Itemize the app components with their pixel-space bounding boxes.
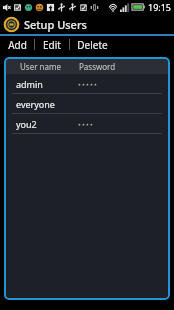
staticText: you2 [16, 118, 78, 130]
button[interactable]: you2 [6, 114, 168, 133]
other: Password hidden [78, 81, 98, 87]
button[interactable]: admin [6, 74, 168, 93]
button[interactable]: Edit [35, 36, 69, 53]
other: Password hidden [78, 121, 94, 127]
staticText: 19:15 [148, 1, 172, 13]
staticText: Delete [77, 38, 108, 52]
staticText: Add [8, 38, 27, 52]
button[interactable]: everyone [6, 94, 168, 113]
staticText: Edit [43, 38, 61, 52]
staticText: User name [20, 61, 61, 72]
button[interactable]: Add [0, 36, 34, 53]
staticText: Password [79, 61, 116, 72]
staticText: Setup Users [24, 17, 87, 32]
button[interactable]: Delete [70, 36, 114, 53]
staticText: everyone [16, 98, 78, 110]
staticText: admin [16, 78, 78, 90]
